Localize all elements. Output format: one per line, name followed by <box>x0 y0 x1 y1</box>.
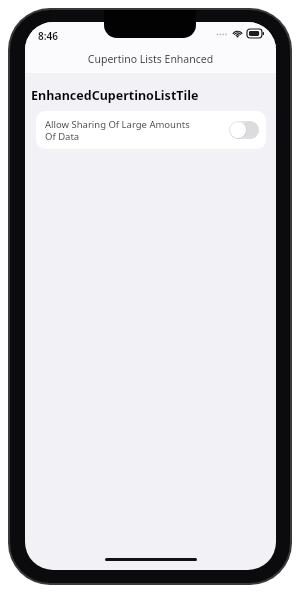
staticText: Cupertino Lists Enhanced <box>25 52 276 66</box>
staticText: EnhancedCupertinoListTile <box>31 87 199 104</box>
staticText: Allow Sharing Of Large Amounts Of Data <box>45 118 225 143</box>
button[interactable]: Allow sharing of large amounts of data t… <box>229 121 259 139</box>
button[interactable]: Allow Sharing Of Large Amounts Of Data <box>36 111 266 149</box>
staticText: 8:46 <box>38 29 58 43</box>
